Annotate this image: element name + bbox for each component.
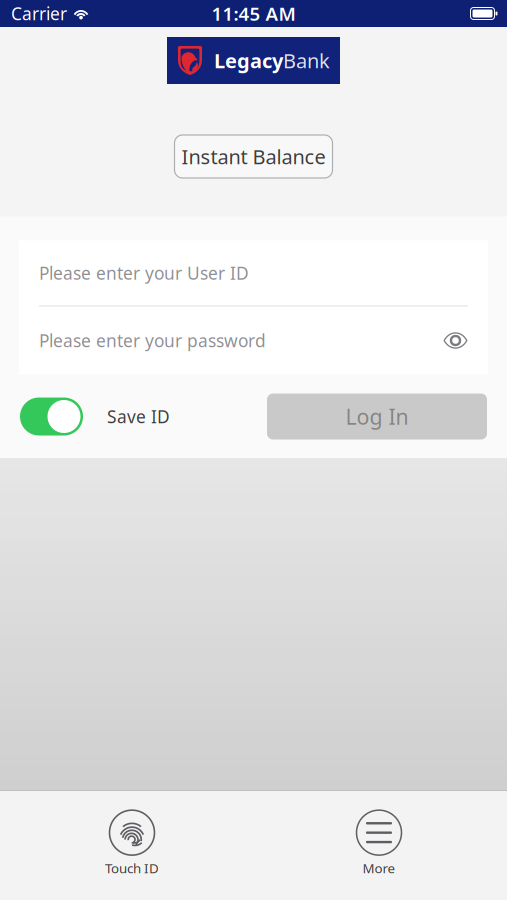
staticText: Instant Balance xyxy=(181,143,325,170)
button[interactable]: Save ID xyxy=(20,397,170,435)
staticText: Touch ID xyxy=(105,859,159,877)
button[interactable]: Log In xyxy=(267,393,487,439)
button[interactable]: More xyxy=(314,812,444,879)
button[interactable]: Touch ID xyxy=(67,812,197,879)
staticText: Please enter your password xyxy=(39,329,266,352)
staticText: Log In xyxy=(345,402,408,431)
staticText: Legacy xyxy=(214,47,283,74)
button[interactable]: Instant Balance xyxy=(174,135,332,178)
staticText: Please enter your User ID xyxy=(39,261,249,284)
staticText: 11:45 AM xyxy=(211,1,295,26)
staticText: Bank xyxy=(283,47,330,74)
staticText: Carrier xyxy=(11,2,67,25)
staticText: More xyxy=(362,859,395,877)
staticText: Save ID xyxy=(107,405,170,428)
button[interactable]: Legacy xyxy=(167,37,340,84)
button[interactable]: Show password xyxy=(443,331,468,350)
